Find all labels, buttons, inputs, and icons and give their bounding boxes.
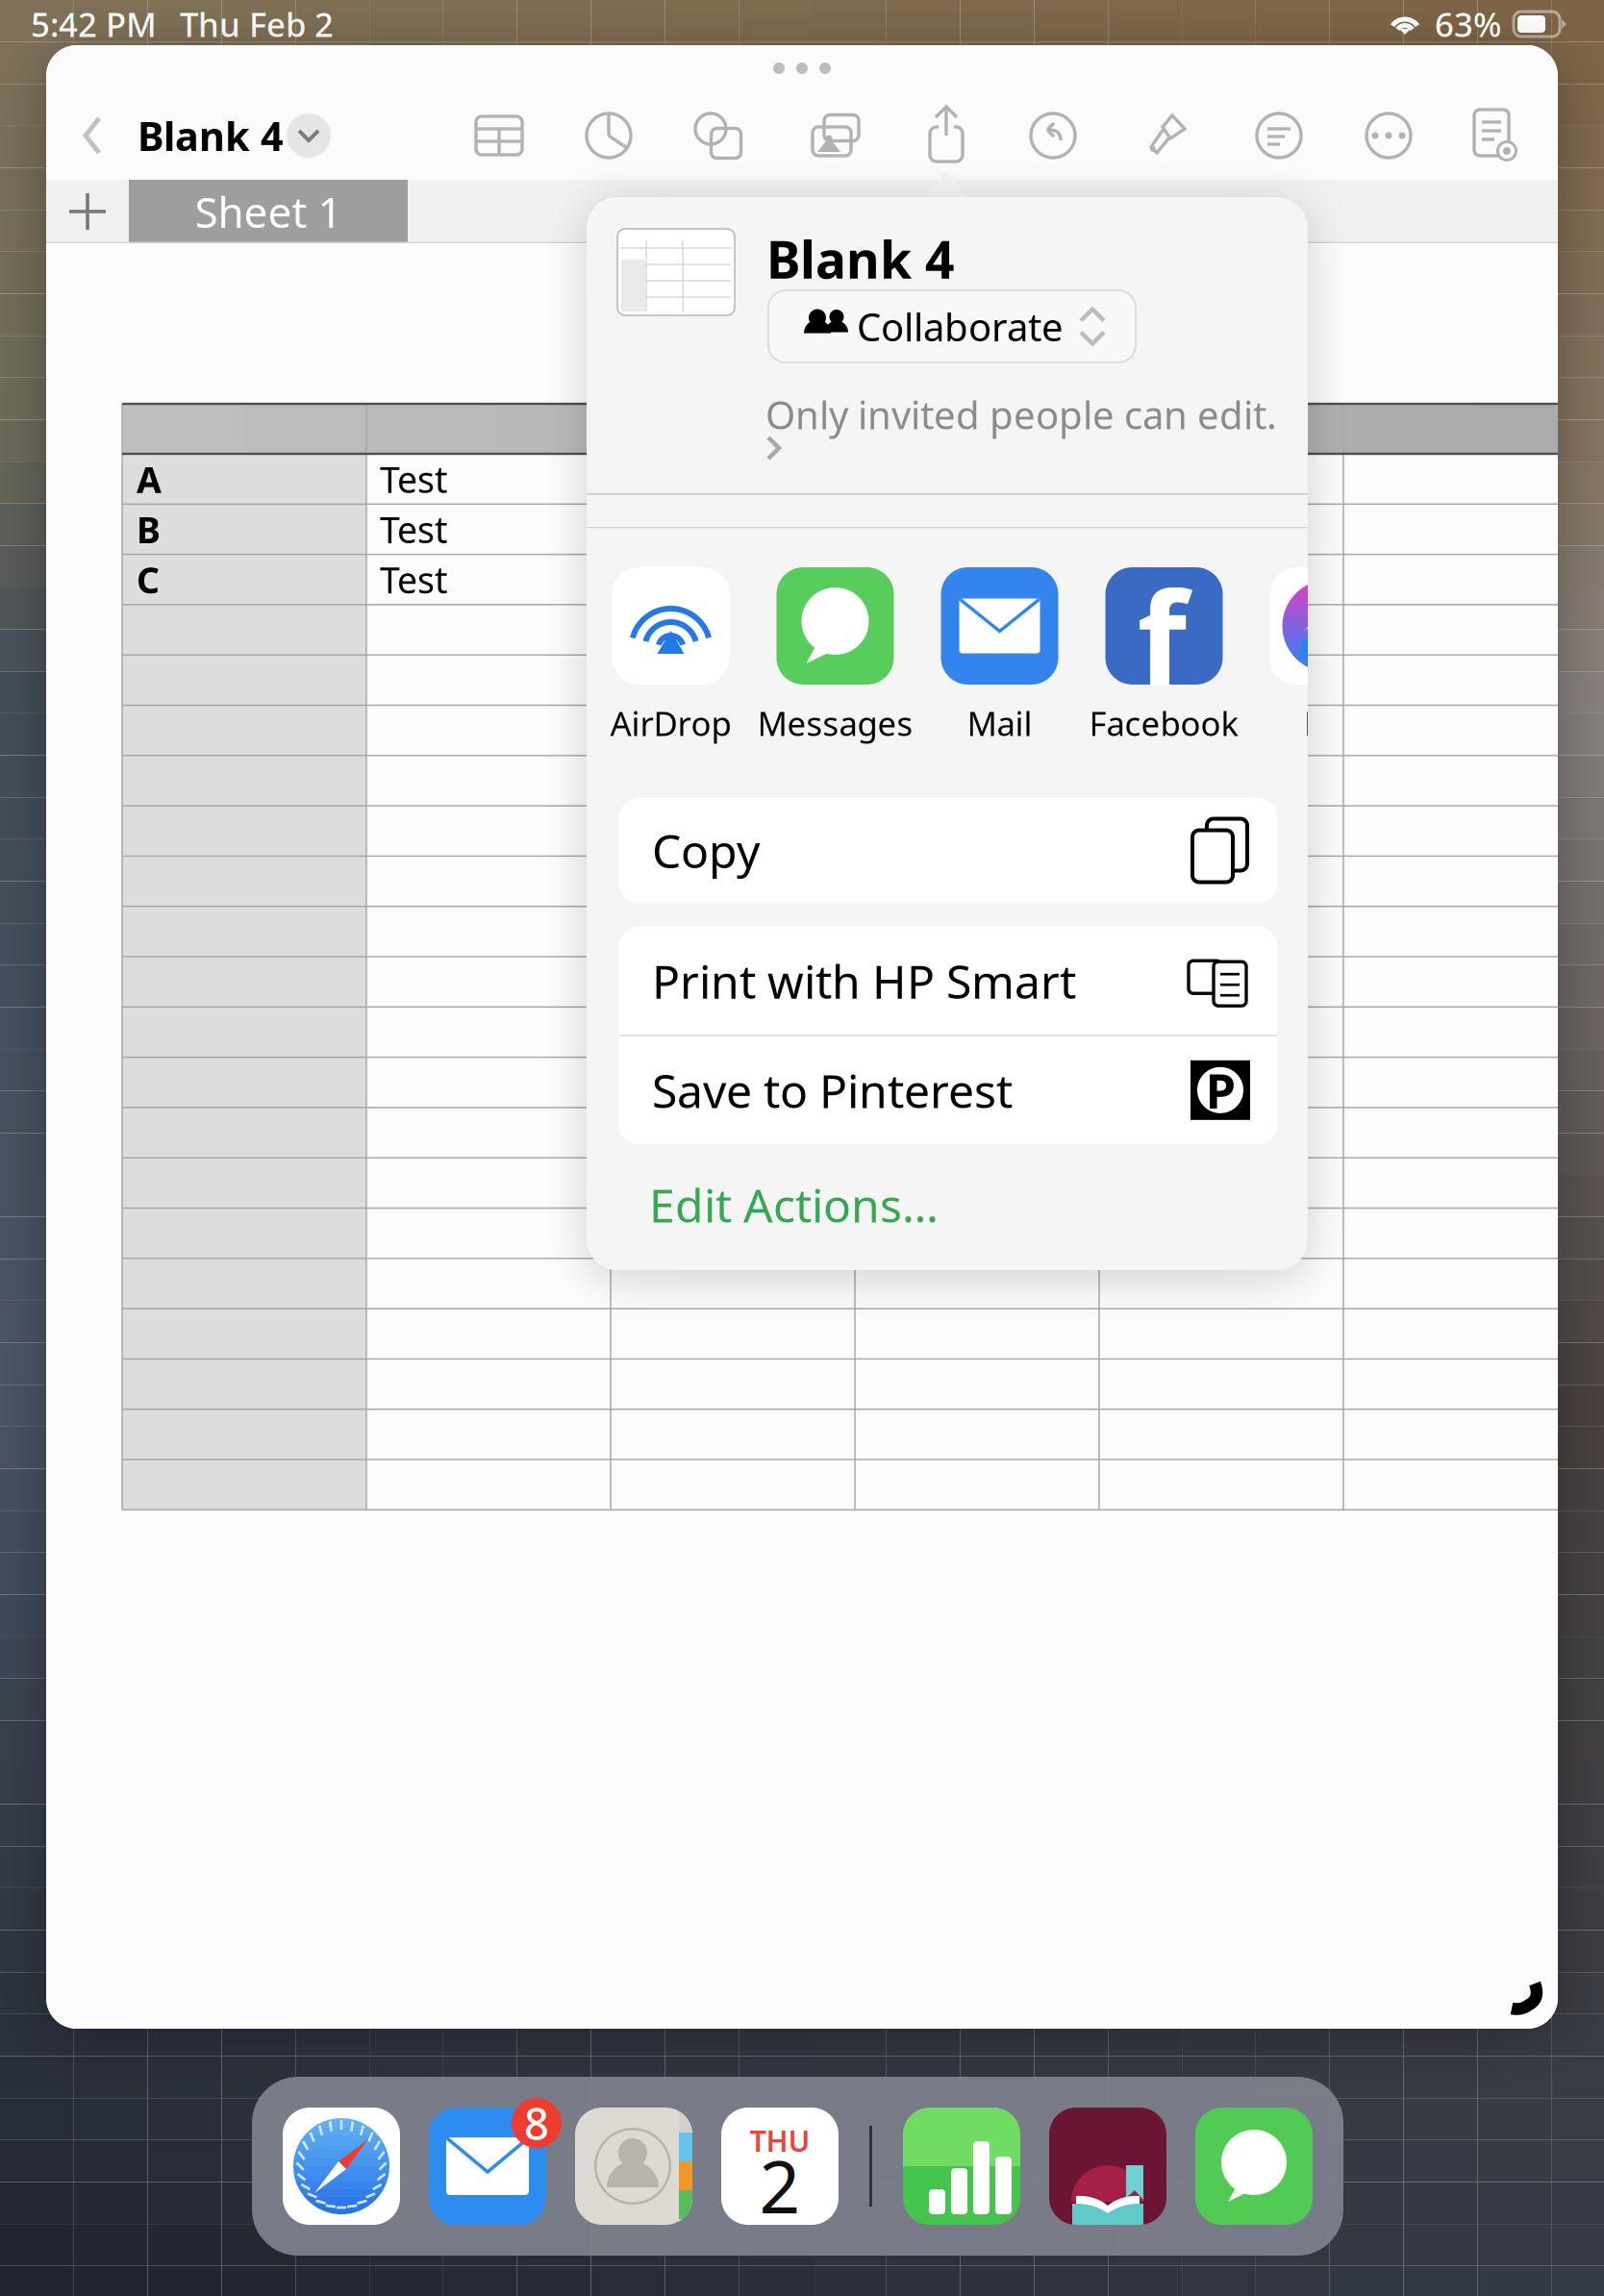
staticText: AirDrop (610, 701, 731, 745)
staticText: Sheet 1 (195, 183, 342, 240)
staticText: THU (750, 2121, 810, 2160)
button[interactable]: Contacts (575, 2108, 692, 2225)
staticText: Copy (652, 820, 760, 881)
staticText: Only invited people can edit. (765, 389, 1277, 440)
staticText: Mail (967, 701, 1032, 745)
button[interactable]: Document options (277, 104, 340, 167)
button[interactable]: Shapes (691, 109, 745, 162)
button[interactable]: Organize (1252, 109, 1306, 162)
button[interactable]: Calendar (721, 2108, 839, 2225)
staticText: B (137, 505, 161, 553)
staticText: 63% (1435, 2, 1502, 46)
button[interactable]: Numbers (903, 2108, 1020, 2225)
button[interactable]: Sheet 1 (129, 180, 408, 243)
staticText: C (137, 556, 160, 603)
staticText: A (137, 455, 162, 503)
staticText: 5:42 PM (31, 2, 157, 46)
staticText: Print with HP Smart (652, 950, 1076, 1011)
staticText: 2 (759, 2138, 801, 2233)
staticText: f (1137, 550, 1187, 721)
staticText: Thu Feb 2 (180, 2, 334, 46)
button[interactable]: Save to Pinterest (619, 1036, 1277, 1144)
button[interactable]: Books (1049, 2108, 1166, 2225)
button[interactable]: Back (63, 94, 121, 177)
button[interactable]: Print with HP Smart (619, 927, 1277, 1035)
button[interactable]: More sharing options (754, 428, 796, 470)
button[interactable]: Copy (619, 798, 1277, 903)
staticText: Facebook (1089, 701, 1239, 745)
staticText: 8 (524, 2094, 549, 2152)
staticText: Test (380, 455, 447, 503)
staticText: Collaborate (857, 301, 1064, 352)
staticText: Test (380, 505, 447, 553)
button[interactable]: Chart (582, 109, 636, 162)
button[interactable]: Add sheet (46, 180, 129, 243)
staticText: Save to Pinterest (652, 1059, 1013, 1121)
button[interactable]: Media (809, 109, 863, 162)
staticText: Test (380, 556, 447, 603)
button[interactable]: Collaborate (768, 290, 1136, 362)
staticText: Blank 4 (138, 109, 284, 162)
button[interactable]: Undo (1026, 109, 1080, 162)
button[interactable]: More (1362, 109, 1416, 162)
staticText: Messages (757, 701, 913, 745)
button[interactable]: View options (1467, 109, 1521, 162)
button[interactable]: Mail (429, 2108, 546, 2225)
button[interactable]: Share (919, 109, 973, 162)
staticText: Blank 4 (766, 225, 955, 293)
button[interactable]: Safari (283, 2108, 400, 2225)
button[interactable]: Table (472, 109, 526, 162)
staticText: Edit Actions… (649, 1174, 939, 1235)
button[interactable]: Format (1139, 109, 1192, 162)
staticText: Me (1304, 701, 1353, 745)
button[interactable]: Edit Actions… (587, 1173, 1053, 1236)
button[interactable]: Messages (1195, 2108, 1313, 2225)
staticText: P (1205, 1058, 1235, 1123)
